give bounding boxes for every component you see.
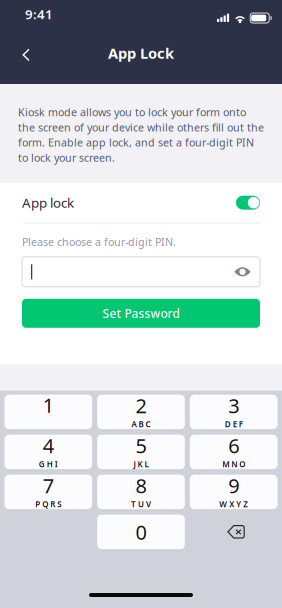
staticText: W X Y Z xyxy=(219,499,248,509)
button[interactable]: 7 xyxy=(4,475,92,509)
staticText: 4 xyxy=(43,432,54,459)
staticText: D E F xyxy=(225,419,243,429)
staticText: A B C xyxy=(131,419,150,429)
button[interactable]: 4 xyxy=(4,435,92,469)
staticText: J K L xyxy=(133,459,148,469)
button[interactable]: 8 xyxy=(97,475,185,509)
button[interactable]: 0 xyxy=(97,515,185,549)
staticText: Set Password xyxy=(102,305,179,321)
button[interactable]: 2 xyxy=(97,395,185,429)
staticText: G H I xyxy=(39,459,58,469)
staticText: App lock xyxy=(22,194,74,211)
button[interactable]: 3 xyxy=(190,395,277,429)
staticText: 2 xyxy=(135,392,146,419)
staticText: App Lock xyxy=(108,43,174,63)
staticText: 8 xyxy=(135,472,146,499)
staticText: Kiosk mode allows you to lock your form … xyxy=(18,105,264,165)
button[interactable]: 6 xyxy=(190,435,277,469)
button[interactable]: 1 xyxy=(4,395,92,429)
staticText: T U V xyxy=(131,499,151,509)
staticText: 7 xyxy=(43,472,54,499)
button[interactable]: Back xyxy=(0,40,46,73)
button[interactable]: 9 xyxy=(190,475,277,509)
staticText: 6 xyxy=(228,432,239,459)
staticText: Please choose a four-digit PIN. xyxy=(22,235,176,249)
staticText: 9:41 xyxy=(25,5,53,23)
staticText: 0 xyxy=(135,519,146,545)
staticText: 1 xyxy=(43,392,54,418)
button[interactable]: Delete xyxy=(190,515,277,549)
button[interactable]: 5 xyxy=(97,435,185,469)
staticText: P Q R S xyxy=(35,499,61,509)
staticText: M N O xyxy=(222,459,245,469)
button[interactable]: App lock xyxy=(236,196,260,210)
staticText: 3 xyxy=(228,392,239,419)
staticText: 9 xyxy=(228,472,239,499)
button[interactable]: Set Password xyxy=(22,299,260,328)
staticText: 5 xyxy=(135,432,146,459)
